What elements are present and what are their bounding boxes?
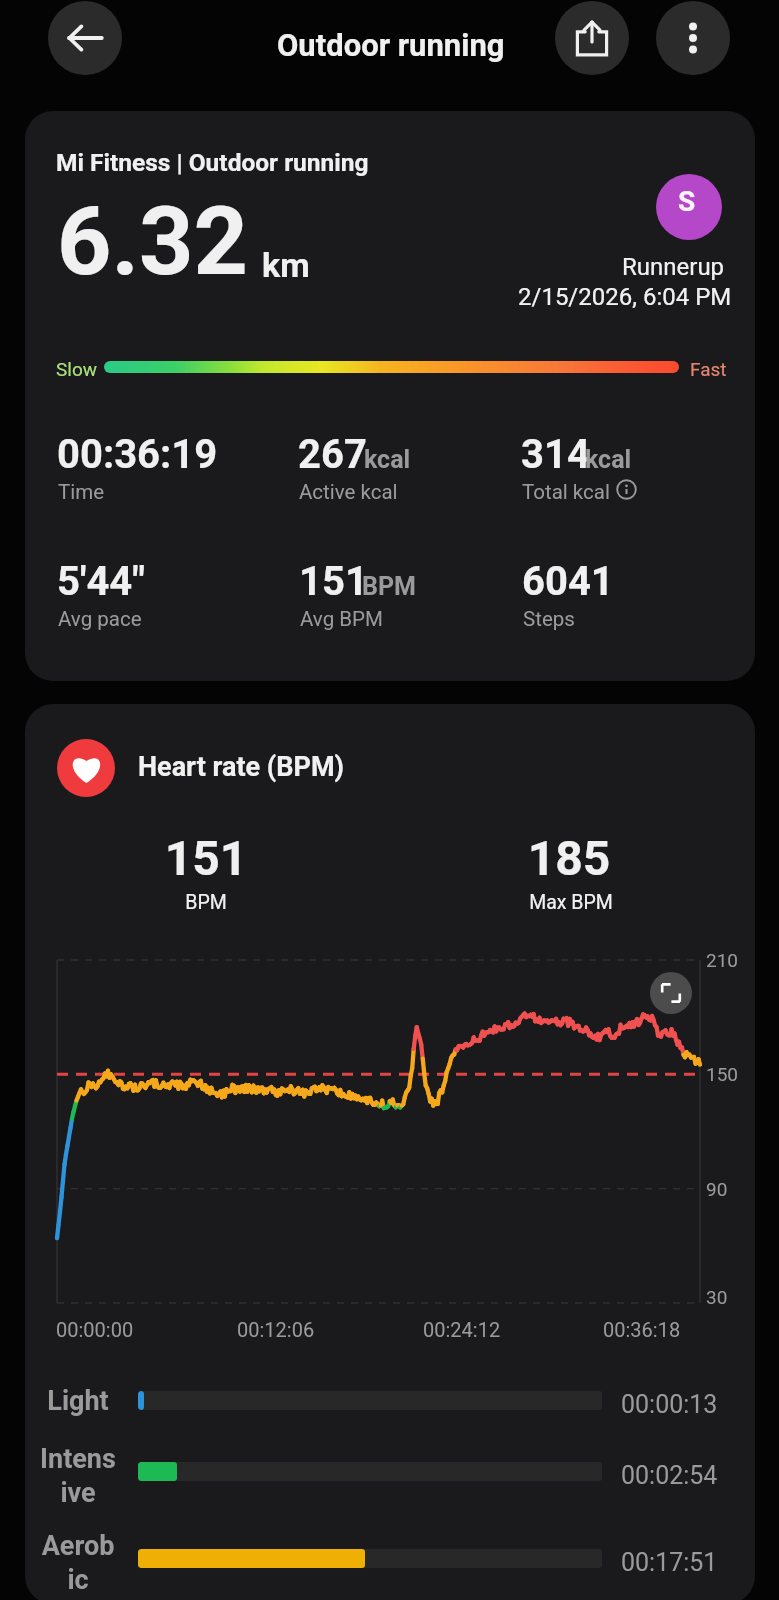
- staticText: Avg pace: [58, 607, 142, 631]
- button[interactable]: Share: [555, 1, 629, 75]
- staticText: kcal: [585, 445, 632, 474]
- staticText: kcal: [364, 445, 411, 474]
- staticText: 6041: [522, 558, 614, 605]
- staticText: 151: [25, 830, 411, 886]
- staticText: 6.32: [57, 186, 249, 297]
- staticText: Outdoor running: [277, 27, 505, 63]
- staticText: Active kcal: [299, 480, 398, 504]
- staticText: Time: [58, 480, 105, 504]
- button[interactable]: Light: [25, 1351, 755, 1431]
- staticText: 2/15/2026, 6:04 PM: [518, 283, 732, 311]
- staticText: 00:00:00: [56, 1318, 134, 1341]
- button[interactable]: Aerob ic: [25, 1509, 755, 1589]
- button[interactable]: More options: [656, 1, 730, 75]
- staticText: Total kcal: [522, 480, 610, 504]
- staticText: S: [678, 185, 696, 218]
- staticText: 90: [706, 1178, 728, 1200]
- button[interactable]: Back: [48, 1, 122, 75]
- staticText: 00:24:12: [423, 1318, 501, 1341]
- staticText: 00:12:06: [237, 1318, 315, 1341]
- staticText: Aerob ic: [25, 1530, 178, 1596]
- staticText: 00:36:18: [603, 1318, 681, 1341]
- staticText: Light: [25, 1385, 178, 1417]
- staticText: km: [262, 245, 310, 285]
- staticText: 150: [706, 1063, 739, 1085]
- staticText: Avg BPM: [300, 607, 383, 631]
- staticText: Runnerup: [622, 253, 725, 281]
- button[interactable]: Info: [616, 479, 637, 500]
- staticText: BPM: [362, 572, 416, 601]
- button[interactable]: Intens ive: [25, 1422, 755, 1502]
- staticText: 5'44": [57, 558, 146, 605]
- button[interactable]: Expand chart: [650, 972, 692, 1014]
- staticText: 210: [706, 949, 739, 971]
- staticText: 185: [364, 830, 755, 886]
- staticText: 00:02:54: [621, 1461, 718, 1490]
- staticText: Slow: [56, 358, 98, 380]
- staticText: BPM: [25, 891, 411, 914]
- staticText: Heart rate (BPM): [138, 751, 345, 783]
- staticText: 00:00:13: [621, 1390, 718, 1419]
- staticText: Steps: [523, 607, 575, 631]
- staticText: 30: [706, 1286, 728, 1308]
- staticText: Fast: [690, 358, 727, 380]
- staticText: 00:17:51: [621, 1548, 718, 1577]
- staticText: Mi Fitness | Outdoor running: [56, 148, 369, 177]
- staticText: Max BPM: [366, 891, 755, 914]
- staticText: 314: [521, 431, 590, 478]
- staticText: 00:36:19: [57, 431, 218, 478]
- staticText: 267: [298, 431, 367, 478]
- staticText: 151: [299, 558, 368, 605]
- staticText: Intens ive: [25, 1443, 178, 1509]
